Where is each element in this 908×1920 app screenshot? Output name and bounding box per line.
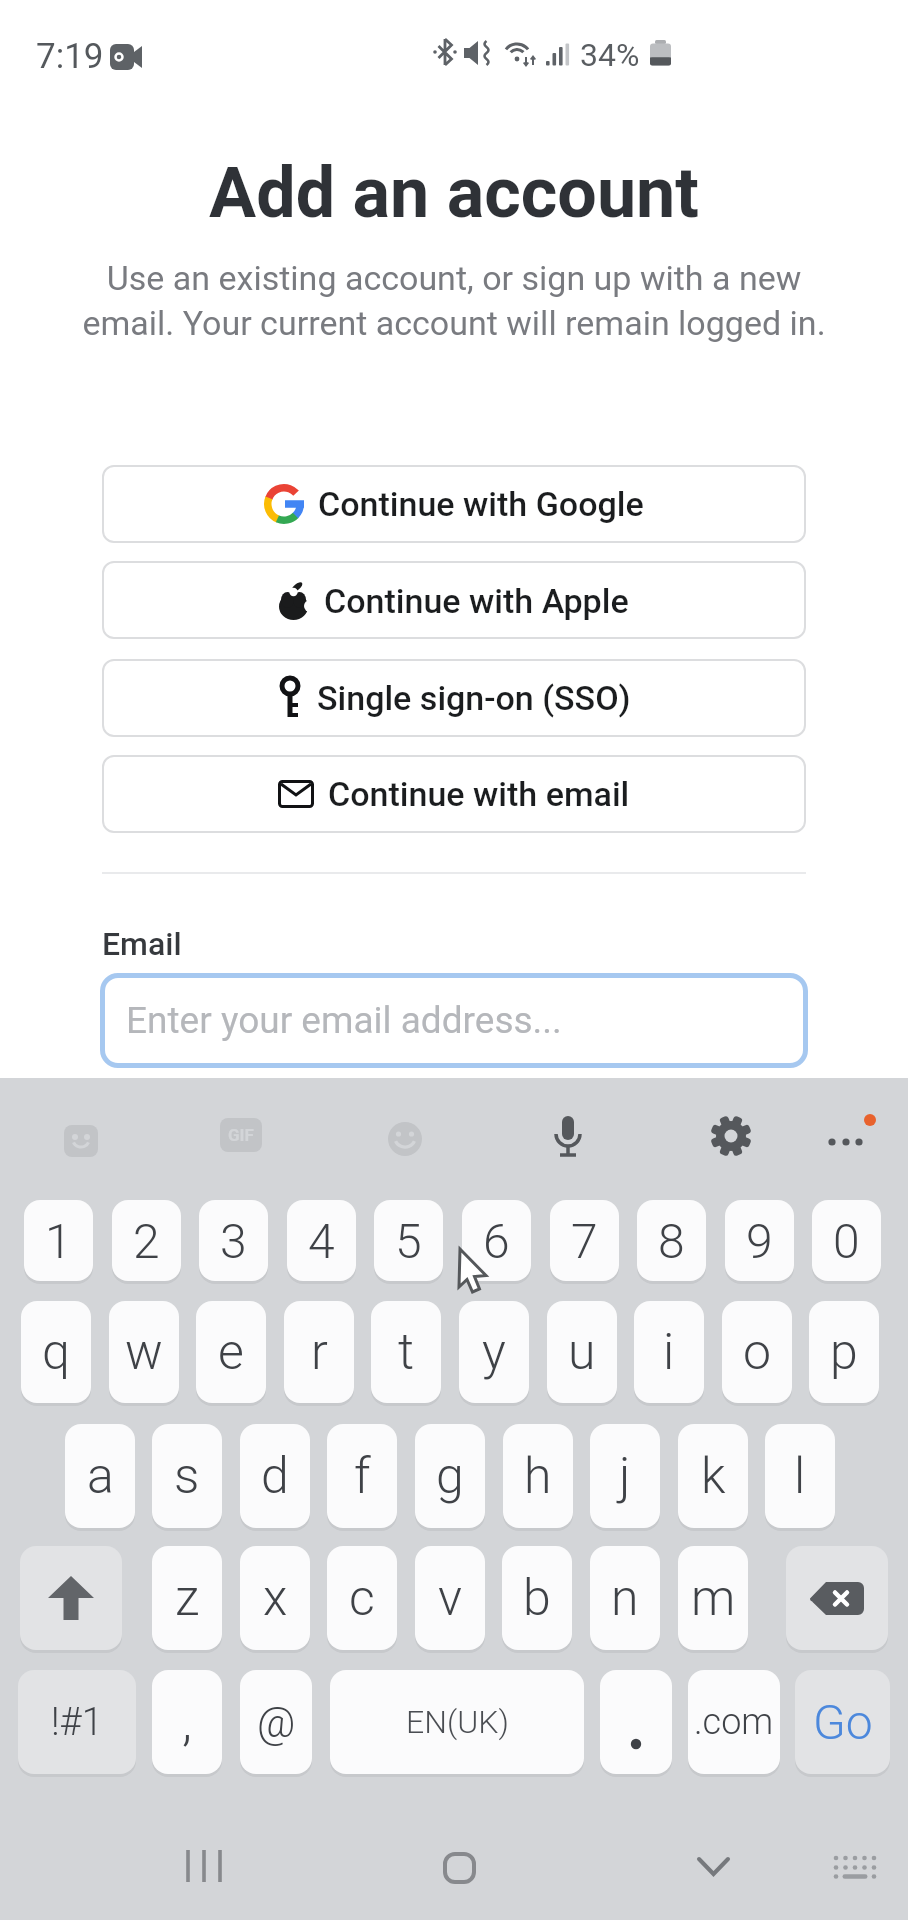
button[interactable]: 2 [112,1200,181,1281]
button[interactable]: 7 [550,1200,619,1281]
staticText: n [611,1569,639,1628]
button[interactable]: 9 [725,1200,794,1281]
button[interactable]: w [109,1301,179,1403]
button[interactable]: .com [688,1670,780,1774]
button[interactable]: f [327,1424,397,1528]
staticText: 6 [483,1213,510,1269]
button[interactable]: p [809,1301,879,1403]
button[interactable]: GIF [220,1118,262,1152]
staticText: 0 [833,1213,860,1269]
button[interactable]: e [196,1301,266,1403]
staticText: .com [694,1701,774,1743]
staticText: c [349,1569,375,1628]
staticText: Add an account [0,152,908,234]
staticText: j [619,1447,631,1506]
button[interactable]: o [722,1301,792,1403]
button[interactable]: Single sign-on (SSO) [102,659,806,737]
staticText: e [218,1323,244,1382]
button[interactable]: i [634,1301,704,1403]
button[interactable]: t [371,1301,441,1403]
staticText: EN(UK) [406,1703,509,1741]
button[interactable] [697,1857,730,1877]
button[interactable]: n [590,1546,660,1650]
staticText: 8 [658,1213,685,1269]
staticText: v [438,1569,463,1628]
button[interactable]: r [284,1301,354,1403]
button[interactable]: 3 [199,1200,268,1281]
staticText: 2 [133,1213,160,1269]
button[interactable]: z [152,1546,222,1650]
button[interactable]: Continue with Google [102,465,806,543]
staticText: f [354,1447,371,1506]
button[interactable]: b [502,1546,572,1650]
button[interactable] [786,1546,888,1650]
staticText: g [436,1447,464,1506]
staticText: Continue with Google [318,484,644,524]
button[interactable]: y [459,1301,529,1403]
staticText: t [398,1323,415,1382]
staticText: 9 [746,1213,773,1269]
button[interactable] [600,1670,672,1774]
button[interactable]: q [21,1301,91,1403]
staticText: 7:19 [36,36,104,77]
button[interactable]: Continue with Apple [102,561,806,639]
button[interactable]: , [152,1670,222,1774]
staticText: Use an existing account, or sign up with… [0,258,908,344]
button[interactable]: k [678,1424,748,1528]
button[interactable]: m [678,1546,748,1650]
button[interactable]: Go [795,1670,890,1774]
staticText: z [175,1569,200,1628]
staticText: 4 [308,1213,335,1269]
button[interactable]: l [765,1424,835,1528]
staticText: 7 [571,1213,598,1269]
button[interactable]: 0 [812,1200,881,1281]
button[interactable]: d [240,1424,310,1528]
button[interactable] [20,1546,122,1650]
button[interactable]: c [327,1546,397,1650]
button[interactable] [387,1121,423,1157]
button[interactable] [832,1855,880,1879]
button[interactable] [443,1852,476,1884]
button[interactable] [709,1114,753,1158]
button[interactable]: EN(UK) [330,1670,584,1774]
staticText: r [311,1323,328,1382]
button[interactable]: Continue with email [102,755,806,833]
staticText: d [261,1447,289,1506]
button[interactable]: s [152,1424,222,1528]
staticText: , [182,1692,192,1753]
staticText: y [482,1323,506,1382]
button[interactable]: 5 [374,1200,443,1281]
button[interactable]: g [415,1424,485,1528]
staticText: Enter your email address... [126,999,562,1042]
button[interactable]: !#1 [18,1670,136,1774]
button[interactable] [62,1121,100,1159]
staticText: 5 [395,1213,422,1269]
staticText: 1 [45,1213,72,1269]
button[interactable]: 8 [637,1200,706,1281]
staticText: 34% [580,36,640,74]
button[interactable]: u [547,1301,617,1403]
button[interactable]: h [503,1424,573,1528]
staticText: !#1 [51,1700,103,1745]
staticText: Go [813,1694,873,1750]
staticText: @ [257,1698,296,1747]
button[interactable]: Enter your email address... [100,973,808,1068]
button[interactable] [551,1116,585,1164]
button[interactable]: 6 [462,1200,531,1281]
button[interactable]: x [240,1546,310,1650]
button[interactable]: 1 [24,1200,93,1281]
staticText: 3 [220,1213,247,1269]
staticText: s [174,1447,200,1506]
staticText: x [263,1569,288,1628]
button[interactable]: @ [240,1670,312,1774]
button[interactable]: 4 [287,1200,356,1281]
staticText: h [524,1447,552,1506]
button[interactable] [186,1850,224,1882]
staticText: m [691,1569,736,1628]
staticText: w [125,1323,163,1382]
button[interactable]: j [590,1424,660,1528]
button[interactable] [826,1120,882,1158]
button[interactable]: v [415,1546,485,1650]
staticText: a [87,1447,114,1506]
button[interactable]: a [65,1424,135,1528]
